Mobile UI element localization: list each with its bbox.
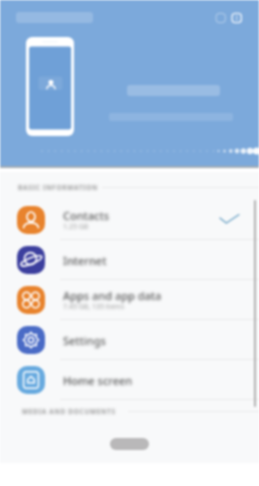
staticText: MEDIA AND DOCUMENTS: [22, 407, 116, 416]
button[interactable]: Settings: [0, 320, 259, 360]
staticText: 1.25 GB: [63, 222, 89, 232]
button[interactable]: Help: [214, 11, 228, 25]
button[interactable]: Apps and app data: [0, 280, 259, 320]
button[interactable]: Internet: [0, 240, 259, 280]
button[interactable]: More options: [230, 11, 244, 25]
staticText: 7.45 GB, 135 items: [63, 302, 124, 312]
staticText: BASIC INFORMATION: [18, 183, 99, 192]
button[interactable]: Contacts: [0, 200, 259, 240]
staticText: Internet: [63, 253, 107, 268]
staticText: Home screen: [63, 373, 133, 388]
staticText: Contacts: [63, 208, 110, 223]
button[interactable]: [110, 438, 149, 450]
button[interactable]: Home screen: [0, 360, 259, 400]
staticText: Apps and app data: [63, 288, 162, 303]
staticText: Settings: [63, 333, 106, 348]
